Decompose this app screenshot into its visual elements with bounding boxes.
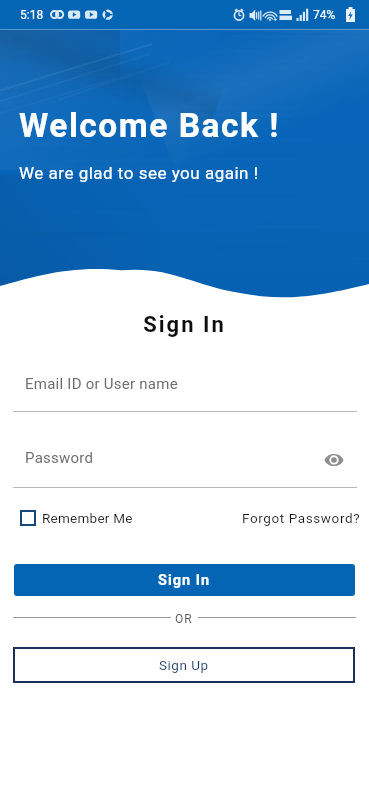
staticText: We are glad to see you again ! <box>19 163 259 183</box>
staticText: Remember Me <box>42 510 133 526</box>
button[interactable]: Sign Up <box>13 647 355 683</box>
staticText: Email ID or User name <box>25 375 178 393</box>
staticText: Sign Up <box>159 657 209 673</box>
staticText: OR <box>175 612 193 626</box>
staticText: Sign In <box>158 572 211 589</box>
staticText: Password <box>25 449 94 467</box>
button[interactable]: Forgot Password? <box>242 510 361 526</box>
button[interactable]: Sign In <box>14 564 355 596</box>
staticText: Forgot Password? <box>242 510 361 526</box>
staticText: 5:18 <box>20 8 44 22</box>
button[interactable]: Show password <box>323 449 345 471</box>
staticText: 74% <box>313 8 336 22</box>
staticText: Welcome Back ! <box>19 106 280 145</box>
button[interactable]: Remember Me <box>20 510 133 526</box>
staticText: Sign In <box>0 312 369 338</box>
